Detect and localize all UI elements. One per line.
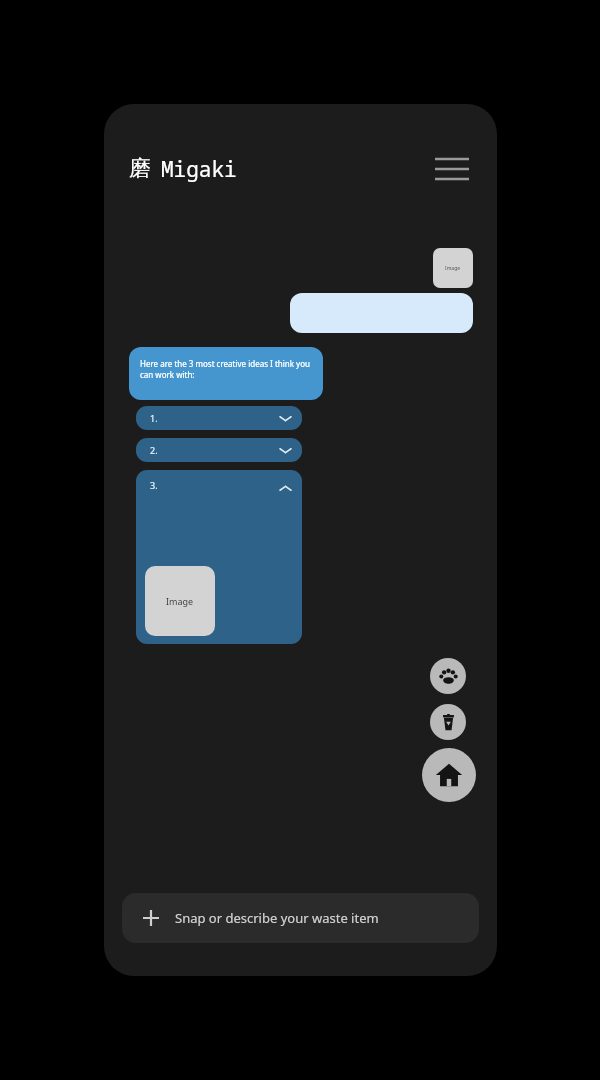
button[interactable]: Image bbox=[433, 248, 473, 288]
button[interactable]: Snap or describe your waste item bbox=[122, 893, 479, 943]
staticText: Image bbox=[166, 595, 194, 607]
staticText: 3. bbox=[150, 479, 158, 491]
staticText: Image bbox=[445, 265, 461, 272]
staticText: 1. bbox=[150, 412, 158, 424]
button[interactable]: Image bbox=[145, 566, 215, 636]
staticText: Migaki bbox=[161, 155, 237, 184]
other: Collapse bbox=[278, 481, 292, 495]
staticText: Here are the 3 most creative ideas I thi… bbox=[140, 358, 313, 380]
staticText: 2. bbox=[150, 444, 158, 456]
staticText: Snap or describe your waste item bbox=[175, 909, 379, 927]
button[interactable]: Drinks bbox=[430, 704, 466, 740]
button[interactable]: 3. bbox=[136, 470, 302, 644]
staticText: 磨 bbox=[129, 155, 151, 183]
button[interactable]: Menu bbox=[432, 149, 472, 189]
button[interactable]: Pets bbox=[430, 658, 466, 694]
button[interactable]: Here are the 3 most creative ideas I thi… bbox=[129, 347, 323, 400]
button[interactable]: 2. bbox=[136, 438, 302, 462]
button[interactable]: Home bbox=[422, 748, 476, 802]
button[interactable]: 1. bbox=[136, 406, 302, 430]
button[interactable] bbox=[290, 293, 473, 333]
